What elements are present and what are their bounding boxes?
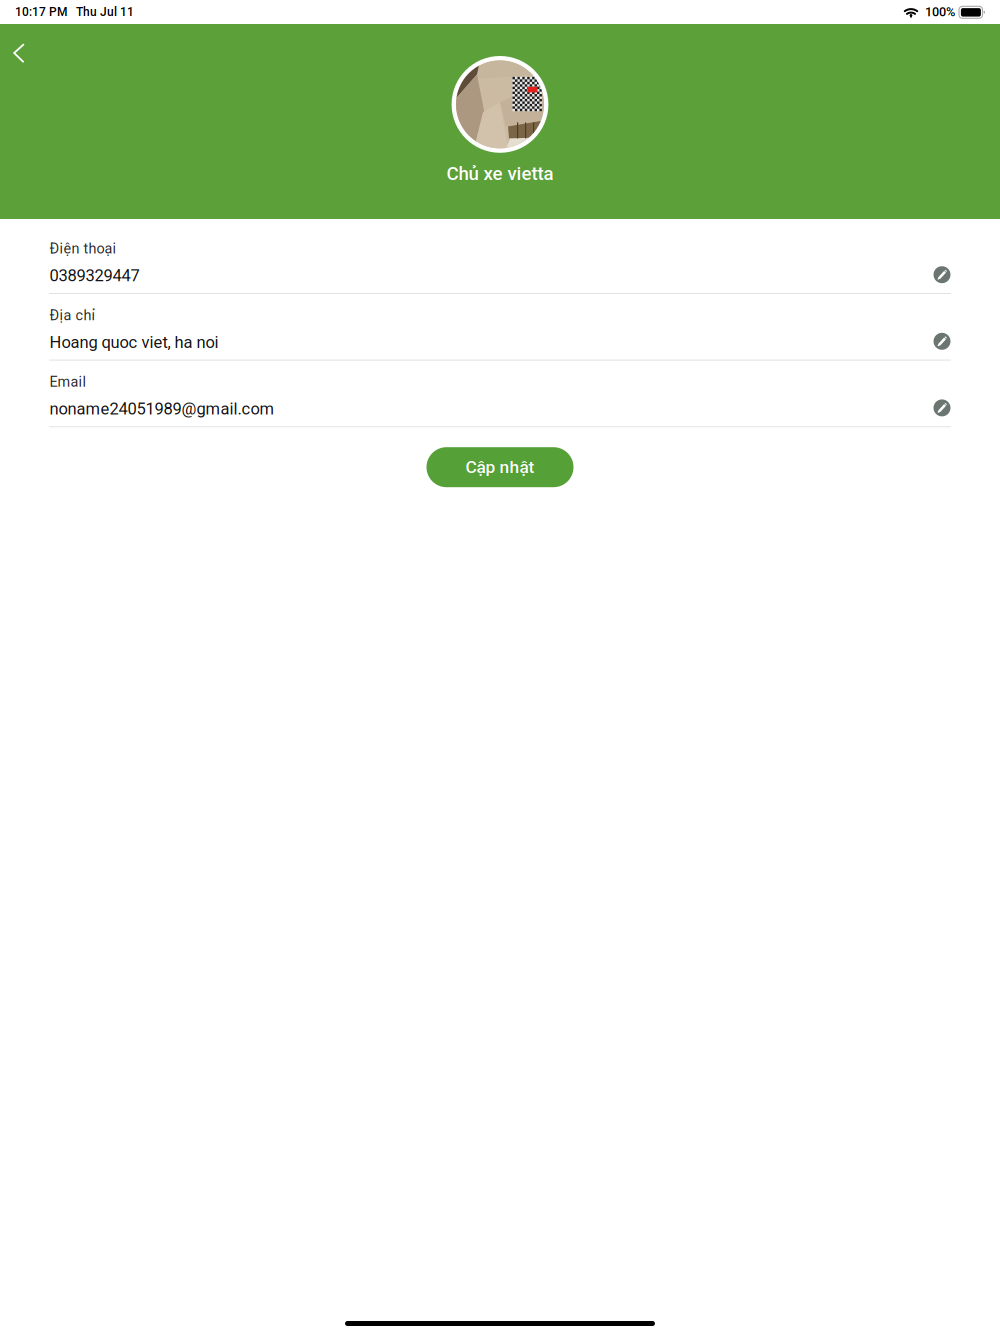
staticText: 10:17 PM bbox=[15, 5, 67, 19]
button[interactable]: Edit bbox=[933, 266, 950, 283]
staticText: noname24051989@gmail.com bbox=[49, 399, 274, 419]
staticText: Chủ xe vietta bbox=[446, 163, 553, 185]
staticText: Điện thoại bbox=[49, 240, 116, 257]
button[interactable]: Cập nhật bbox=[426, 447, 573, 487]
button[interactable]: Edit bbox=[933, 399, 950, 416]
staticText: 100% bbox=[925, 5, 955, 19]
button[interactable]: Back bbox=[0, 31, 44, 75]
staticText: Thu Jul 11 bbox=[76, 5, 134, 19]
staticText: Hoang quoc viet, ha noi bbox=[49, 333, 218, 352]
staticText: Cập nhật bbox=[465, 457, 534, 477]
staticText: 0389329447 bbox=[49, 266, 139, 285]
button[interactable]: Edit bbox=[933, 333, 950, 350]
staticText: Email bbox=[49, 373, 86, 390]
staticText: Địa chỉ bbox=[49, 307, 95, 324]
